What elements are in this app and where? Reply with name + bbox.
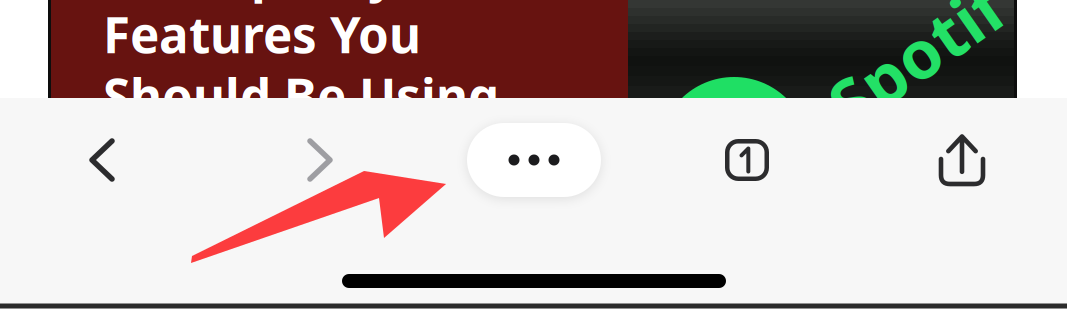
button[interactable]: Tabs bbox=[699, 112, 795, 208]
staticText: Best Spotify bbox=[103, 0, 396, 5]
button[interactable]: Share bbox=[914, 112, 1010, 208]
staticText: Features You bbox=[103, 1, 421, 67]
button[interactable]: Back bbox=[54, 112, 150, 208]
staticText: Spotif bbox=[818, 11, 1014, 99]
staticText: Should Be Using bbox=[103, 63, 499, 128]
button[interactable]: Forward bbox=[272, 112, 368, 208]
button[interactable]: More bbox=[467, 123, 601, 197]
